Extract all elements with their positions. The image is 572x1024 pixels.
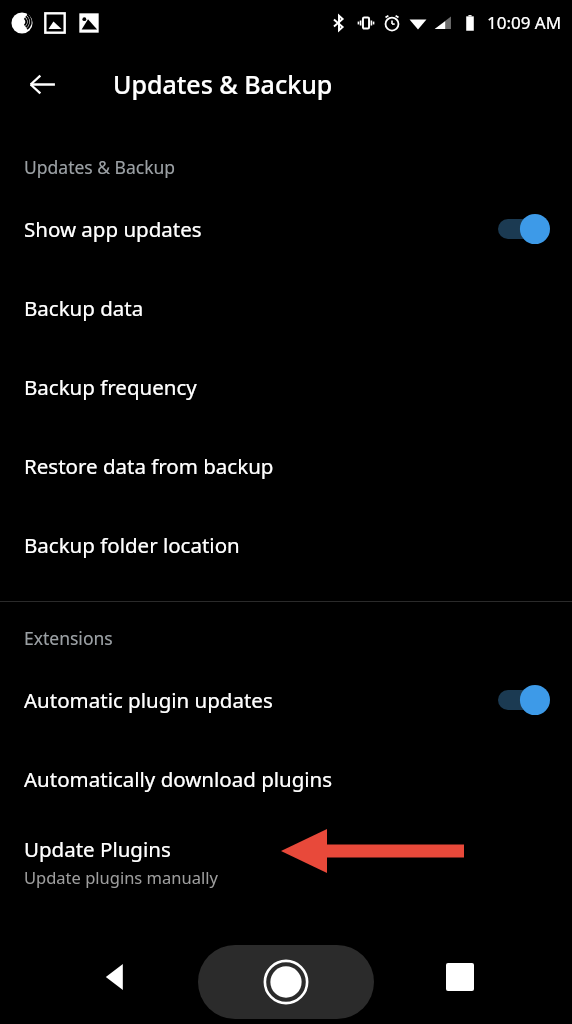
button[interactable]: Show app updates xyxy=(0,189,572,268)
button[interactable]: Restore data from backup xyxy=(0,426,572,505)
button[interactable]: Backup data xyxy=(0,268,572,347)
staticText: Extensions xyxy=(24,626,113,650)
staticText: Restore data from backup xyxy=(24,452,274,480)
staticText: Backup data xyxy=(24,294,144,322)
staticText: 10:09 AM xyxy=(487,11,562,34)
staticText: Update plugins manually xyxy=(24,866,218,888)
button[interactable]: Home xyxy=(198,945,374,1019)
button[interactable]: Recent apps xyxy=(432,949,488,1005)
button[interactable]: Back xyxy=(16,58,68,110)
staticText: Automatic plugin updates xyxy=(24,686,498,714)
button[interactable]: Backup folder location xyxy=(0,505,572,584)
staticText: Update Plugins xyxy=(24,835,171,863)
staticText: Updates & Backup xyxy=(113,67,333,101)
staticText: Automatically download plugins xyxy=(24,765,333,793)
staticText: Show app updates xyxy=(24,215,498,243)
button[interactable]: Backup frequency xyxy=(0,347,572,426)
button[interactable]: Automatically download plugins xyxy=(0,739,572,818)
button[interactable]: Automatic plugin updates xyxy=(0,660,572,739)
staticText: Backup frequency xyxy=(24,373,197,401)
staticText: Updates & Backup xyxy=(24,155,176,179)
button[interactable]: Back xyxy=(86,949,142,1005)
staticText: Backup folder location xyxy=(24,531,240,559)
button[interactable]: Update Plugins xyxy=(0,818,572,904)
